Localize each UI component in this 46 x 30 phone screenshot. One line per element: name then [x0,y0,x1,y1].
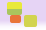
button[interactable]: Lemon card [7,2,22,15]
button[interactable]: Soup card [10,15,21,23]
button[interactable]: Salad card [24,15,37,27]
